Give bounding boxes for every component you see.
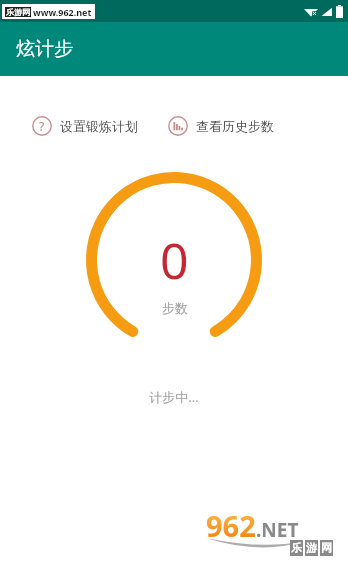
staticText: ? [39, 118, 45, 134]
staticText: 设置锻炼计划 [60, 118, 138, 134]
staticText: .NET [256, 517, 299, 543]
staticText: 计步中... [0, 388, 348, 406]
staticText: 乐游网 [6, 7, 30, 17]
staticText: 乐 [291, 541, 302, 555]
staticText: 步数 [162, 300, 188, 316]
staticText: 0 [160, 226, 189, 294]
staticText: 炫计步 [16, 37, 73, 61]
staticText: 查看历史步数 [196, 118, 274, 134]
staticText: 网 [321, 541, 332, 555]
other: 设置锻炼计划 [32, 116, 52, 136]
other: 查看历史步数 [168, 116, 188, 136]
staticText: www.962.net [33, 6, 92, 18]
staticText: 游 [306, 541, 317, 555]
button[interactable]: 设置锻炼计划 [30, 112, 140, 140]
button[interactable]: 查看历史步数 [166, 112, 276, 140]
staticText: 962 [206, 506, 256, 545]
